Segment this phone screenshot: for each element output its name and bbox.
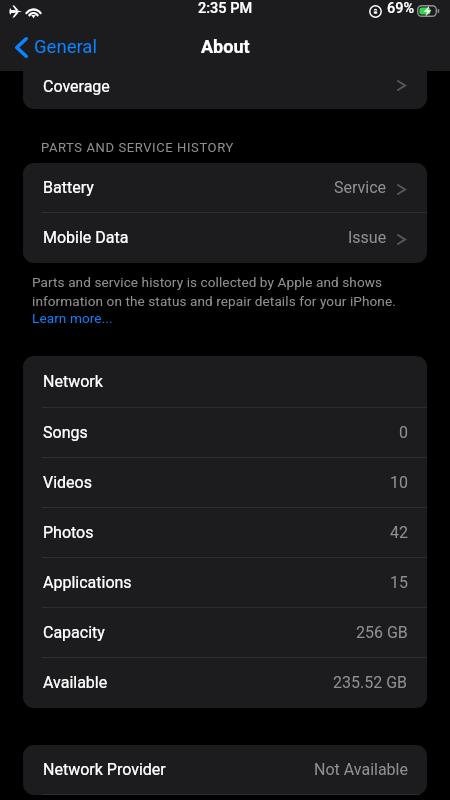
staticText: 10 xyxy=(390,473,408,492)
staticText: Videos xyxy=(43,473,92,492)
button[interactable]: Photos xyxy=(23,508,427,558)
button[interactable]: Mobile Data xyxy=(23,213,427,263)
staticText: Photos xyxy=(43,523,94,542)
staticText: Issue xyxy=(348,228,387,247)
staticText: 0 xyxy=(399,423,408,442)
staticText: PARTS AND SERVICE HISTORY xyxy=(41,140,234,155)
staticText: Mobile Data xyxy=(43,228,129,247)
button[interactable]: Network xyxy=(23,356,427,408)
staticText: Coverage xyxy=(43,77,110,96)
staticText: 2:35 PM xyxy=(198,0,253,17)
button[interactable]: Available xyxy=(23,658,427,708)
staticText: Not Available xyxy=(314,760,408,779)
staticText: 235.52 GB xyxy=(333,673,408,692)
staticText: Network xyxy=(43,372,103,391)
staticText: Parts and service history is collected b… xyxy=(32,274,418,310)
button[interactable]: Songs xyxy=(23,408,427,458)
staticText: 69% xyxy=(387,0,415,17)
button[interactable]: Learn more... xyxy=(32,310,113,326)
staticText: Available xyxy=(43,673,108,692)
staticText: 15 xyxy=(390,573,408,592)
staticText: 42 xyxy=(390,523,408,542)
button[interactable]: Applications xyxy=(23,558,427,608)
staticText: 256 GB xyxy=(356,623,408,642)
staticText: General xyxy=(34,36,97,58)
button[interactable]: Battery xyxy=(23,163,427,213)
staticText: Battery xyxy=(43,178,94,197)
button[interactable]: Videos xyxy=(23,458,427,508)
staticText: About xyxy=(201,36,250,57)
staticText: Songs xyxy=(43,423,88,442)
staticText: Service xyxy=(334,178,387,197)
staticText: Applications xyxy=(43,573,132,592)
staticText: Capacity xyxy=(43,623,105,642)
staticText: Network Provider xyxy=(43,760,166,779)
button[interactable]: Network Provider xyxy=(23,745,427,795)
button[interactable]: Coverage xyxy=(23,59,427,109)
button[interactable]: Capacity xyxy=(23,608,427,658)
button[interactable]: General xyxy=(11,31,101,63)
